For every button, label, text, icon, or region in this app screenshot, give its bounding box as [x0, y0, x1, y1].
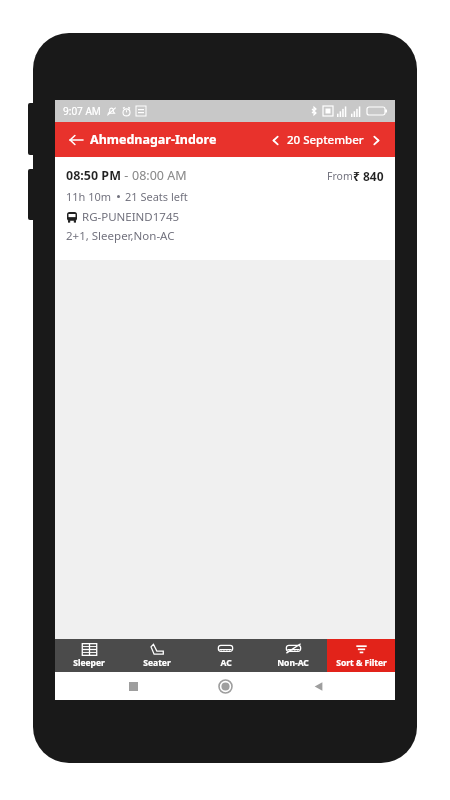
staticText: Seater [143, 657, 171, 669]
button[interactable]: Back [65, 129, 87, 151]
button[interactable]: Previous day [266, 131, 284, 149]
button[interactable]: AC [191, 639, 259, 672]
staticText: Non-AC [277, 657, 309, 669]
staticText: 11h 10m [66, 189, 112, 204]
button[interactable]: Non-AC [259, 639, 327, 672]
button[interactable]: Home [210, 672, 240, 700]
staticText: 08:00 AM [132, 167, 187, 184]
staticText: 2+1, Sleeper,Non-AC [66, 228, 175, 244]
staticText: From [327, 169, 353, 183]
staticText: Ahmednagar-Indore [90, 131, 217, 148]
staticText: 21 Seats left [125, 189, 188, 204]
staticText: 20 September [287, 132, 364, 148]
staticText: RG-PUNEIND1745 [82, 209, 180, 225]
staticText: 9:07 AM [63, 104, 101, 118]
button[interactable]: Sort & Filter [327, 639, 395, 672]
staticText: ₹ 840 [353, 168, 384, 184]
button[interactable]: 08:50 PM [55, 157, 395, 260]
button[interactable]: Back [303, 672, 333, 700]
staticText: - [121, 167, 132, 184]
button[interactable]: Recents [118, 672, 148, 700]
button[interactable]: Next day [367, 131, 385, 149]
staticText: Sort & Filter [336, 657, 387, 669]
button[interactable]: Sleeper [55, 639, 123, 672]
button[interactable]: Seater [123, 639, 191, 672]
staticText: AC [220, 657, 232, 669]
staticText: 08:50 PM [66, 167, 121, 184]
staticText: Sleeper [73, 657, 105, 669]
